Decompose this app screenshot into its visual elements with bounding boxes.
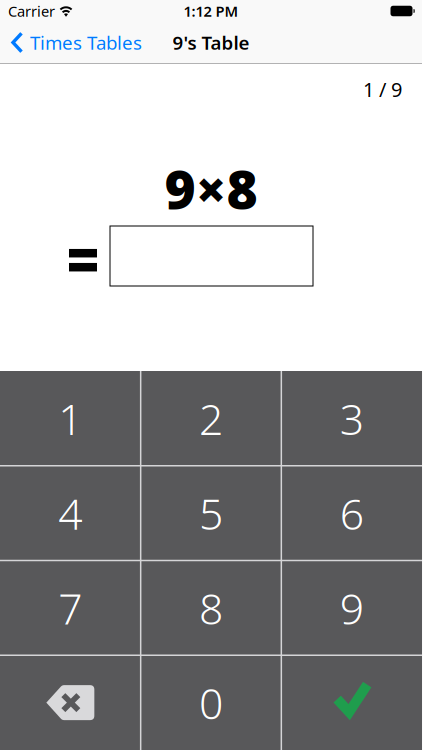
staticText: 0: [199, 674, 223, 731]
staticText: 1 / 9: [363, 76, 402, 103]
staticText: 2: [199, 390, 223, 447]
staticText: 9×8: [164, 153, 257, 224]
button[interactable]: 9: [281, 560, 422, 655]
button[interactable]: 2: [141, 371, 281, 466]
staticText: 3: [340, 390, 364, 447]
button[interactable]: 3: [281, 371, 422, 466]
staticText: Times Tables: [30, 30, 142, 55]
button[interactable]: 1: [0, 371, 141, 466]
button[interactable]: 7: [0, 560, 141, 655]
staticText: 5: [199, 485, 223, 541]
button[interactable]: Delete: [0, 655, 141, 750]
button[interactable]: 8: [141, 560, 281, 655]
button[interactable]: Submit answer: [281, 655, 422, 750]
staticText: 9: [340, 579, 364, 636]
button[interactable]: 0: [141, 655, 281, 750]
button[interactable]: 4: [0, 466, 141, 561]
staticText: 4: [58, 485, 82, 541]
staticText: Carrier: [8, 1, 55, 21]
staticText: 1: [58, 390, 82, 447]
button[interactable]: 6: [281, 466, 422, 561]
button[interactable]: 5: [141, 466, 281, 561]
staticText: 7: [58, 579, 82, 636]
staticText: 6: [340, 485, 364, 541]
button[interactable]: Times Tables: [11, 30, 142, 55]
staticText: 8: [199, 579, 223, 636]
staticText: 9's Table: [172, 30, 249, 55]
staticText: 1:12 PM: [183, 1, 238, 21]
